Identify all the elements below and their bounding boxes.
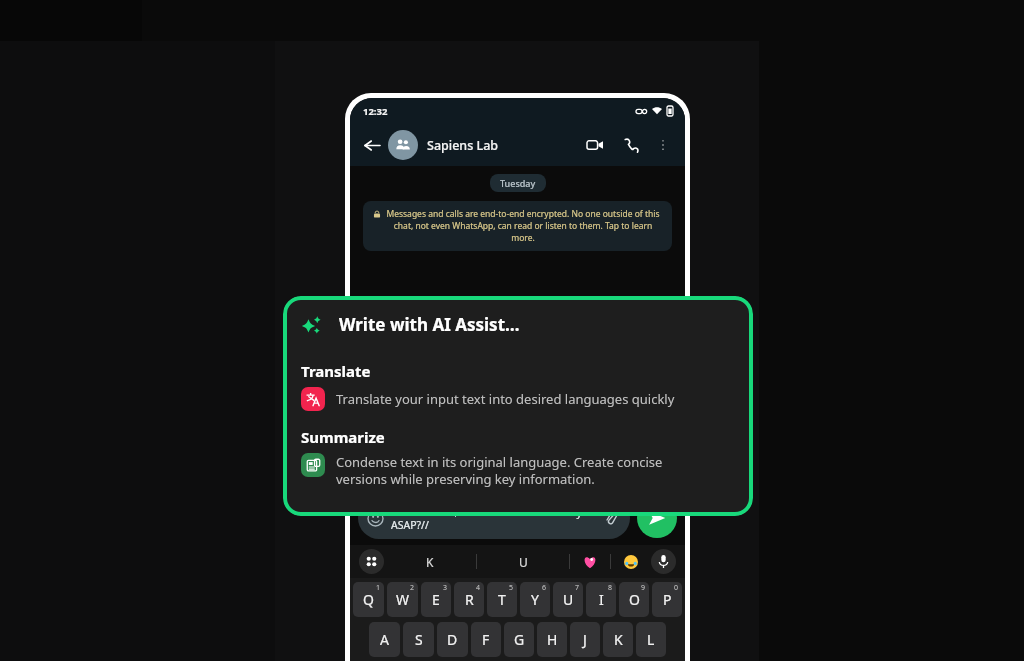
staticText: J (583, 630, 587, 649)
staticText: K (614, 630, 623, 649)
button[interactable]: D (437, 622, 468, 657)
staticText: 2 (410, 583, 415, 593)
staticText: 3 (443, 583, 448, 593)
staticText: 8 (608, 583, 613, 593)
button[interactable]: How to turn $200 into the most money ASA… (358, 497, 630, 539)
button[interactable]: K (603, 622, 633, 657)
staticText: O (629, 590, 640, 609)
button[interactable]: W (387, 582, 418, 617)
staticText: Tuesday (500, 177, 536, 189)
button[interactable]: Y (520, 582, 550, 617)
staticText: G (514, 630, 525, 649)
staticText: F (482, 630, 490, 649)
button[interactable]: F (471, 622, 501, 657)
button[interactable]: Write with AI Assist… (283, 296, 753, 516)
staticText: 1 (376, 583, 381, 593)
staticText: Write with AI Assist… (339, 313, 520, 336)
button[interactable]: Voice call (618, 132, 644, 158)
button[interactable]: A (369, 622, 400, 657)
staticText: W (396, 590, 410, 609)
staticText: 6 (542, 583, 547, 593)
button[interactable]: Heart emoji (570, 555, 610, 569)
staticText: 4 (476, 583, 481, 593)
button[interactable]: Scroll to bottom (635, 380, 675, 420)
button[interactable]: U (477, 554, 569, 570)
staticText: How to turn $200 into the most money ASA… (391, 505, 597, 532)
button[interactable]: G (504, 622, 534, 657)
button[interactable]: S (403, 622, 434, 657)
staticText: Translate your input text into desired l… (336, 390, 675, 408)
staticText: Sapiens Lab (427, 137, 499, 154)
button[interactable]: K (384, 554, 476, 570)
button[interactable]: I (586, 582, 616, 617)
button[interactable]: Attach (601, 508, 621, 528)
staticText: L (647, 630, 655, 649)
button[interactable]: Voice input (651, 549, 676, 574)
button[interactable]: Video call (582, 132, 608, 158)
button[interactable]: Toolbar (359, 549, 384, 574)
staticText: 5 (509, 583, 514, 593)
staticText: Y (531, 590, 539, 609)
staticText: H (547, 630, 558, 649)
staticText: 7 (575, 583, 580, 593)
button[interactable]: Q (353, 582, 384, 617)
button[interactable]: E (421, 582, 451, 617)
staticText: 12:32 (363, 105, 388, 118)
staticText: A (380, 630, 389, 649)
button[interactable]: Sapiens Lab (427, 137, 582, 154)
button[interactable]: L (636, 622, 666, 657)
button[interactable]: U (553, 582, 583, 617)
staticText: Condense text in its original language. … (336, 453, 696, 488)
staticText: I (599, 590, 604, 609)
staticText: R (465, 590, 474, 609)
staticText: Translate (301, 361, 371, 381)
button[interactable]: P (652, 582, 682, 617)
button[interactable]: Group avatar (388, 130, 418, 160)
staticText: U (519, 554, 528, 570)
staticText: K (426, 554, 434, 570)
staticText: Summarize (301, 427, 385, 447)
button[interactable]: More options (652, 134, 674, 156)
button[interactable]: R (454, 582, 484, 617)
staticText: 9 (641, 583, 646, 593)
staticText: U (563, 590, 574, 609)
button[interactable]: Send (637, 498, 677, 538)
staticText: Messages and calls are end-to-end encryp… (384, 208, 662, 244)
button[interactable]: Messages and calls are end-to-end encryp… (363, 201, 672, 251)
staticText: P (663, 590, 672, 609)
button[interactable]: J (570, 622, 600, 657)
button[interactable]: T (487, 582, 517, 617)
staticText: E (432, 590, 440, 609)
button[interactable]: Back (361, 134, 383, 156)
staticText: T (498, 590, 506, 609)
button[interactable]: Crying emoji (611, 555, 651, 569)
button[interactable]: H (537, 622, 567, 657)
staticText: 0 (674, 583, 679, 593)
button[interactable]: Tuesday (500, 177, 536, 189)
button[interactable]: O (619, 582, 649, 617)
staticText: Q (363, 590, 374, 609)
staticText: D (447, 630, 458, 649)
staticText: S (415, 630, 423, 649)
